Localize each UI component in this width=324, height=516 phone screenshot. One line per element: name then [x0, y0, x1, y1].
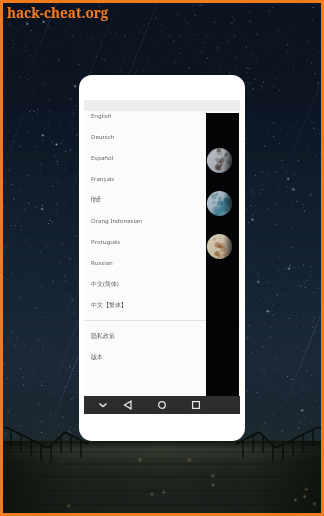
button[interactable]: 中文(简体): [84, 273, 240, 294]
staticText: hack-cheat.org: [7, 4, 109, 22]
staticText: Deutsch: [91, 133, 115, 141]
button[interactable]: 中文【繁体】: [84, 294, 240, 315]
button[interactable]: Français: [84, 168, 240, 189]
staticText: 版本: [91, 353, 103, 361]
button[interactable]: हिंदी: [84, 189, 240, 210]
button[interactable]: Russian: [84, 252, 240, 273]
button[interactable]: 隐私政策: [84, 325, 240, 346]
button[interactable]: Home: [152, 396, 172, 414]
button[interactable]: 版本: [84, 346, 240, 367]
staticText: 中文【繁体】: [91, 301, 127, 309]
button[interactable]: Hide keyboard: [93, 396, 113, 414]
button[interactable]: Protuguès: [84, 231, 240, 252]
button[interactable]: Back: [118, 396, 138, 414]
button[interactable]: English: [84, 105, 240, 126]
staticText: हिंदी: [91, 196, 101, 204]
button[interactable]: Deutsch: [84, 126, 240, 147]
staticText: 隐私政策: [91, 332, 115, 340]
staticText: English: [91, 112, 112, 120]
staticText: 中文(简体): [91, 280, 119, 288]
staticText: Protuguès: [91, 238, 121, 246]
staticText: Russian: [91, 259, 113, 267]
button[interactable]: Español: [84, 147, 240, 168]
staticText: Español: [91, 154, 114, 162]
button[interactable]: Orang Indonesian: [84, 210, 240, 231]
staticText: Orang Indonesian: [91, 217, 143, 225]
staticText: Français: [91, 175, 115, 183]
button[interactable]: Recent apps: [186, 396, 206, 414]
